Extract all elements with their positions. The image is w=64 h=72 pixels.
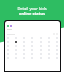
staticText: online status xyxy=(0,11,64,16)
staticText: Detail your kids xyxy=(0,6,64,11)
